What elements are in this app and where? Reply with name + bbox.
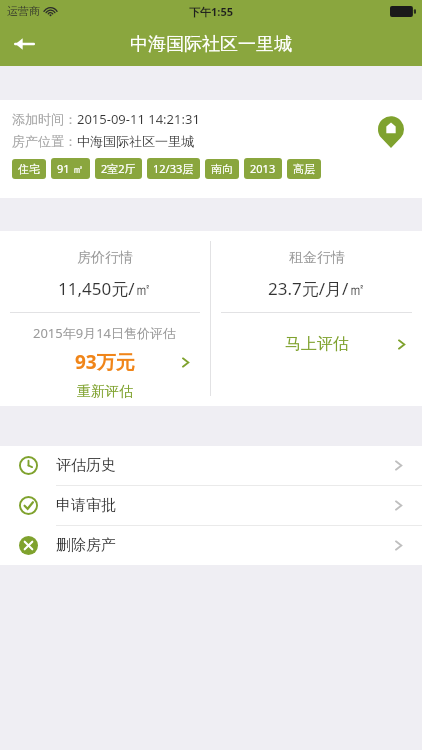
staticText: 运营商 [7, 4, 40, 18]
staticText: 11,450元/㎡ [58, 277, 152, 300]
staticText: 2015年9月14日售价评估 [33, 324, 177, 342]
button[interactable]: 12/33层 [147, 158, 200, 179]
staticText: 23.7元/月/㎡ [268, 277, 366, 300]
button[interactable]: 马上评估 [211, 313, 422, 375]
button[interactable]: 2室2厅 [95, 158, 142, 179]
button[interactable]: 高层 [287, 159, 321, 179]
staticText: 2室2厅 [101, 161, 136, 176]
staticText: 下午1:55 [189, 4, 233, 19]
staticText: 南向 [211, 162, 233, 176]
staticText: 中海国际社区一里城 [77, 133, 194, 149]
button[interactable]: 91 ㎡ [51, 158, 90, 179]
staticText: 删除房产 [56, 536, 116, 555]
button[interactable]: 住宅 [12, 159, 46, 179]
staticText: 2013 [250, 161, 276, 176]
staticText: 评估历史 [56, 456, 116, 475]
staticText: 申请审批 [56, 496, 116, 515]
staticText: 马上评估 [285, 334, 349, 354]
button[interactable]: 申请审批 [0, 486, 422, 525]
staticText: 12/33层 [153, 161, 194, 176]
staticText: 2015-09-11 14:21:31 [77, 110, 200, 128]
button[interactable]: 删除房产 [0, 526, 422, 565]
staticText: 住宅 [18, 162, 40, 176]
staticText: 中海国际社区一里城 [130, 33, 292, 56]
staticText: 93万元 [75, 349, 135, 375]
staticText: 房产位置： [12, 133, 77, 149]
button[interactable]: Back [0, 22, 48, 66]
button[interactable]: 南向 [205, 159, 239, 179]
staticText: 添加时间： [12, 111, 77, 127]
staticText: 房价行情 [77, 249, 133, 267]
staticText: 租金行情 [289, 249, 345, 267]
button[interactable]: 2015年9月14日售价评估 [0, 313, 210, 401]
button[interactable]: Location [378, 116, 404, 148]
button[interactable]: 2013 [244, 158, 282, 179]
button[interactable]: 评估历史 [0, 446, 422, 485]
staticText: 重新评估 [77, 383, 133, 401]
staticText: 91 ㎡ [57, 161, 84, 176]
staticText: 高层 [293, 162, 315, 176]
